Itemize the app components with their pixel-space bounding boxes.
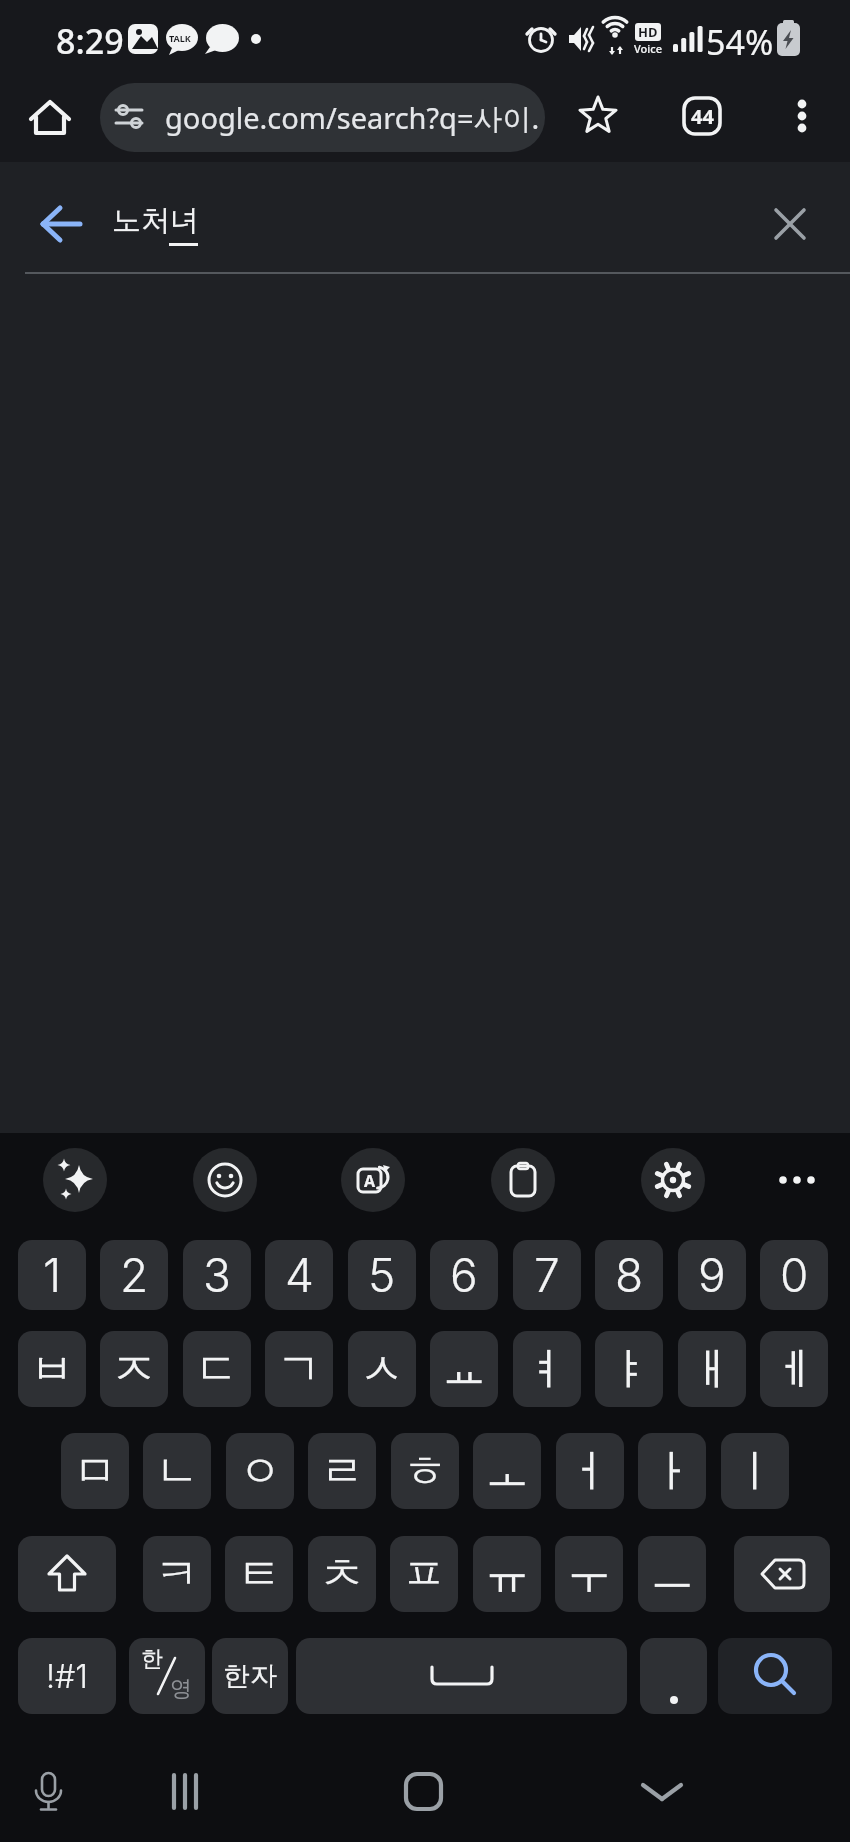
staticText: 한자: [223, 1659, 277, 1693]
button[interactable]: ㅍ: [390, 1536, 458, 1612]
staticText: TALK: [169, 32, 191, 44]
button[interactable]: 한자: [212, 1638, 288, 1714]
button[interactable]: [18, 1762, 78, 1822]
button[interactable]: ㅐ: [678, 1331, 746, 1407]
button[interactable]: 0: [760, 1240, 828, 1310]
button[interactable]: ㅓ: [556, 1433, 624, 1509]
button[interactable]: ㅜ: [555, 1536, 623, 1612]
staticText: ㅑ: [607, 1342, 651, 1397]
staticText: 노처녀: [112, 202, 199, 239]
button[interactable]: [632, 1762, 692, 1822]
button[interactable]: A: [341, 1148, 405, 1212]
button[interactable]: ㅋ: [143, 1536, 211, 1612]
button[interactable]: 7: [513, 1240, 581, 1310]
button[interactable]: [734, 1536, 830, 1612]
staticText: 54%: [706, 19, 774, 65]
button[interactable]: 4: [265, 1240, 333, 1310]
button[interactable]: ㅛ: [430, 1331, 498, 1407]
staticText: ㄹ: [320, 1444, 364, 1499]
staticText: ㅛ: [442, 1342, 486, 1397]
button[interactable]: [641, 1148, 705, 1212]
button[interactable]: [393, 1762, 453, 1822]
staticText: google.com/search?q=사이.: [165, 98, 540, 138]
button[interactable]: ㅇ: [226, 1433, 294, 1509]
staticText: ㅎ: [403, 1444, 447, 1499]
staticText: ㅕ: [525, 1342, 569, 1397]
staticText: ㅂ: [30, 1342, 74, 1397]
staticText: 0: [780, 1247, 809, 1303]
button[interactable]: [296, 1638, 627, 1714]
button[interactable]: 2: [100, 1240, 168, 1310]
button[interactable]: 3: [183, 1240, 251, 1310]
staticText: ㅓ: [568, 1444, 612, 1499]
button[interactable]: ㄹ: [308, 1433, 376, 1509]
staticText: ㄱ: [277, 1342, 321, 1397]
button[interactable]: [22, 88, 78, 144]
staticText: ㅜ: [567, 1547, 611, 1602]
button[interactable]: [155, 1762, 215, 1822]
button[interactable]: [765, 1148, 829, 1212]
staticText: 4: [285, 1247, 314, 1303]
button[interactable]: [193, 1148, 257, 1212]
staticText: 6: [450, 1247, 478, 1303]
button[interactable]: 8: [595, 1240, 663, 1310]
button[interactable]: [640, 1638, 707, 1714]
button[interactable]: [43, 1148, 107, 1212]
button[interactable]: ㅡ: [638, 1536, 706, 1612]
staticText: HD: [638, 23, 658, 41]
staticText: 한: [141, 1645, 163, 1673]
button[interactable]: ㅔ: [760, 1331, 828, 1407]
button[interactable]: ㅂ: [18, 1331, 86, 1407]
button[interactable]: ㅎ: [391, 1433, 459, 1509]
staticText: 9: [698, 1247, 726, 1303]
staticText: ㅈ: [112, 1342, 156, 1397]
button[interactable]: !#1: [18, 1638, 116, 1714]
button[interactable]: [18, 1536, 116, 1612]
staticText: ㅐ: [690, 1342, 734, 1397]
button[interactable]: ㅣ: [721, 1433, 789, 1509]
staticText: ㅔ: [772, 1342, 816, 1397]
button[interactable]: ㅈ: [100, 1331, 168, 1407]
button[interactable]: 9: [678, 1240, 746, 1310]
button[interactable]: 5: [348, 1240, 416, 1310]
staticText: 2: [120, 1247, 149, 1303]
staticText: ㅣ: [733, 1444, 777, 1499]
button[interactable]: ㅌ: [225, 1536, 293, 1612]
button[interactable]: ㅁ: [61, 1433, 129, 1509]
staticText: ㅅ: [360, 1342, 404, 1397]
staticText: 8:29: [56, 18, 124, 64]
staticText: ㅊ: [320, 1547, 364, 1602]
button[interactable]: [100, 83, 545, 152]
button[interactable]: ㅏ: [638, 1433, 706, 1509]
staticText: 5: [368, 1247, 396, 1303]
button[interactable]: ㅗ: [473, 1433, 541, 1509]
staticText: 1: [43, 1247, 62, 1303]
button[interactable]: [570, 88, 626, 144]
button[interactable]: 6: [430, 1240, 498, 1310]
button[interactable]: ㄷ: [183, 1331, 251, 1407]
button[interactable]: 44: [674, 88, 730, 144]
staticText: ㄴ: [155, 1444, 199, 1499]
button[interactable]: ㅠ: [473, 1536, 541, 1612]
button[interactable]: [774, 88, 830, 144]
button[interactable]: ㄱ: [265, 1331, 333, 1407]
button[interactable]: [718, 1638, 832, 1714]
button[interactable]: ㅅ: [348, 1331, 416, 1407]
staticText: ㅌ: [237, 1547, 281, 1602]
staticText: 44: [691, 103, 714, 130]
staticText: ㅏ: [650, 1444, 694, 1499]
staticText: A: [364, 1170, 376, 1192]
button[interactable]: ㅑ: [595, 1331, 663, 1407]
button[interactable]: [30, 192, 94, 256]
button[interactable]: ㅊ: [308, 1536, 376, 1612]
button[interactable]: 한: [129, 1638, 205, 1714]
button[interactable]: 1: [18, 1240, 86, 1310]
button[interactable]: [491, 1148, 555, 1212]
button[interactable]: ㄴ: [143, 1433, 211, 1509]
button[interactable]: [762, 196, 818, 252]
staticText: 7: [534, 1247, 560, 1303]
button[interactable]: ㅕ: [513, 1331, 581, 1407]
staticText: 3: [203, 1247, 231, 1303]
staticText: ㅁ: [73, 1444, 117, 1499]
staticText: 영: [170, 1675, 192, 1703]
